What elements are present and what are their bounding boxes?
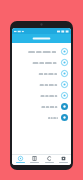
button[interactable]: Item action 6 [12, 101, 71, 112]
button[interactable]: Item action 7 [12, 112, 71, 123]
button[interactable]: Item action 4 [12, 79, 71, 90]
other: Item action 3 [61, 70, 68, 77]
other: Item action 1 [61, 48, 68, 55]
other: Item action 6 [61, 103, 68, 110]
button[interactable]: Item action 3 [12, 68, 71, 79]
button[interactable]: Item action 5 [12, 90, 71, 101]
button[interactable]: Search [42, 154, 56, 165]
button[interactable]: Bookmarks [27, 154, 41, 165]
button[interactable]: Home [13, 154, 27, 165]
other: Item action 7 [61, 114, 68, 121]
button[interactable]: Item action 2 [12, 57, 71, 68]
button[interactable]: More [56, 154, 70, 165]
button[interactable]: Item action 1 [12, 46, 71, 57]
other: Item action 4 [61, 81, 68, 88]
other: Item action 5 [61, 92, 68, 99]
other: Item action 2 [61, 59, 68, 66]
